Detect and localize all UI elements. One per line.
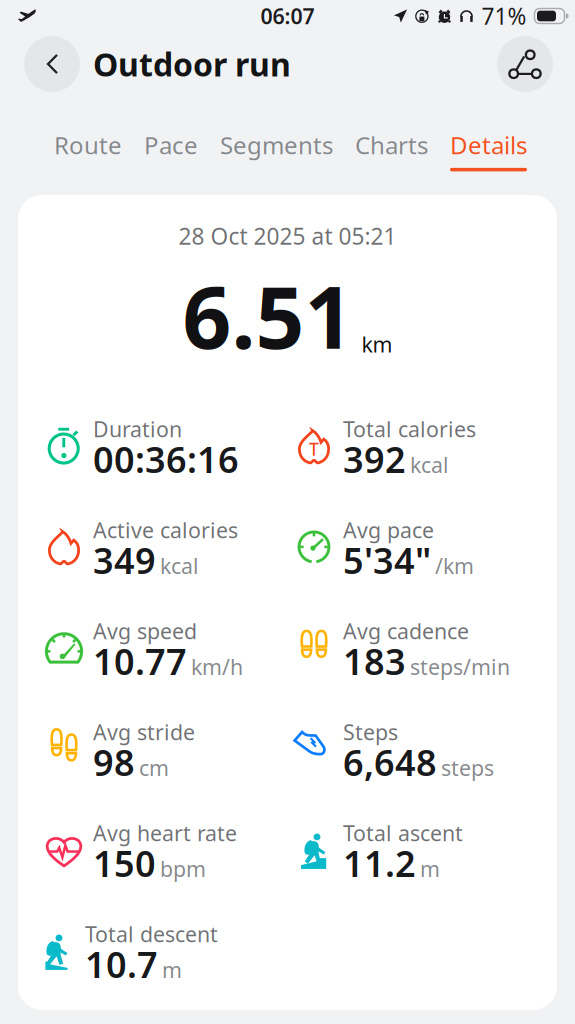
- staticText: 6.51: [182, 259, 353, 372]
- button[interactable]: Back: [24, 36, 80, 92]
- staticText: Avg heart rate: [93, 819, 237, 847]
- staticText: 28 Oct 2025 at 05:21: [178, 221, 396, 251]
- staticText: km/h: [191, 653, 243, 681]
- staticText: steps/min: [410, 653, 510, 681]
- staticText: 349: [93, 536, 156, 584]
- staticText: Total ascent: [343, 819, 463, 847]
- staticText: 392: [343, 435, 406, 483]
- staticText: Avg speed: [93, 617, 197, 645]
- button[interactable]: Segments: [220, 123, 333, 175]
- staticText: Active calories: [93, 516, 238, 544]
- staticText: Outdoor run: [93, 43, 291, 85]
- button[interactable]: Pace: [144, 123, 198, 175]
- staticText: 10.7: [85, 940, 158, 988]
- staticText: Total calories: [343, 415, 476, 443]
- staticText: Route: [54, 129, 122, 161]
- staticText: kcal: [410, 451, 449, 479]
- staticText: 98: [93, 738, 135, 786]
- staticText: 11.2: [343, 839, 416, 887]
- staticText: Duration: [93, 415, 182, 443]
- staticText: kcal: [160, 552, 199, 580]
- staticText: 10.77: [93, 637, 187, 685]
- staticText: 6,648: [343, 738, 437, 786]
- staticText: T: [309, 437, 319, 460]
- staticText: Avg stride: [93, 718, 195, 746]
- staticText: Steps: [343, 718, 398, 746]
- staticText: 00:36:16: [93, 435, 239, 483]
- staticText: steps: [441, 754, 494, 782]
- staticText: Segments: [220, 129, 333, 161]
- staticText: 71%: [481, 1, 526, 31]
- staticText: cm: [139, 754, 169, 782]
- staticText: m: [162, 956, 182, 984]
- staticText: Avg cadence: [343, 617, 469, 645]
- staticText: bpm: [160, 855, 206, 883]
- button[interactable]: Route: [54, 123, 122, 175]
- staticText: 06:07: [260, 2, 314, 30]
- staticText: Details: [450, 129, 527, 161]
- staticText: Pace: [144, 129, 198, 161]
- staticText: Total descent: [85, 920, 218, 948]
- button[interactable]: Charts: [355, 123, 428, 175]
- staticText: 5'34": [343, 536, 431, 584]
- staticText: Avg pace: [343, 516, 434, 544]
- staticText: 150: [93, 839, 156, 887]
- staticText: Charts: [355, 129, 428, 161]
- staticText: 183: [343, 637, 406, 685]
- staticText: m: [420, 855, 440, 883]
- button[interactable]: Share: [497, 36, 553, 92]
- staticText: km: [361, 330, 392, 358]
- button[interactable]: Details: [450, 123, 527, 175]
- staticText: /km: [435, 552, 474, 580]
